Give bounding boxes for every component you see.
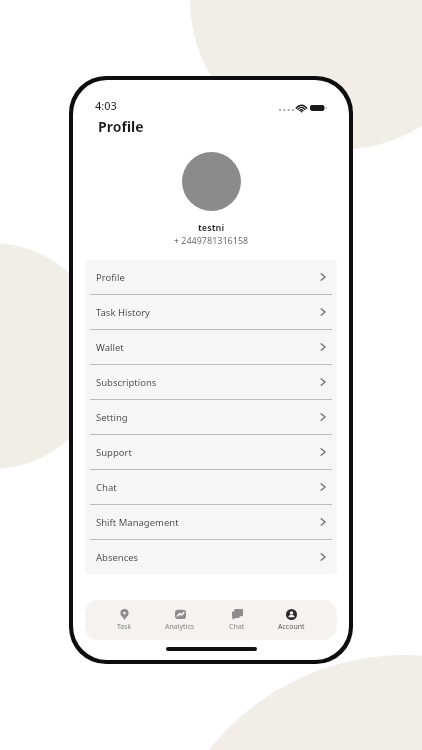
staticText: Chat xyxy=(229,622,245,632)
staticText: Analytics xyxy=(165,622,195,632)
staticText: Shift Management xyxy=(96,516,179,529)
button[interactable]: Support xyxy=(85,435,337,469)
staticText: 4:03 xyxy=(95,98,117,113)
staticText: Profile xyxy=(98,117,144,136)
staticText: Absences xyxy=(96,551,139,564)
staticText: Task xyxy=(117,622,132,632)
staticText: testni xyxy=(73,221,349,233)
staticText: Chat xyxy=(96,481,117,494)
staticText: Subscriptions xyxy=(96,376,157,389)
staticText: Task History xyxy=(96,306,150,319)
staticText: + 2449781316158 xyxy=(73,234,349,246)
button[interactable]: Task xyxy=(111,606,138,635)
button[interactable]: Task History xyxy=(85,295,337,329)
button[interactable]: Absences xyxy=(85,540,337,574)
staticText: Setting xyxy=(96,411,128,424)
button[interactable]: Account xyxy=(272,606,311,635)
button[interactable]: Wallet xyxy=(85,330,337,364)
button[interactable]: Shift Management xyxy=(85,505,337,539)
button[interactable]: Chat xyxy=(223,606,251,635)
button[interactable]: Subscriptions xyxy=(85,365,337,399)
button[interactable]: Analytics xyxy=(159,606,201,635)
button[interactable]: Chat xyxy=(85,470,337,504)
button[interactable]: Profile xyxy=(85,260,337,294)
staticText: Account xyxy=(278,622,305,632)
staticText: Wallet xyxy=(96,341,124,354)
button[interactable]: Setting xyxy=(85,400,337,434)
staticText: Support xyxy=(96,446,132,459)
staticText: Profile xyxy=(96,271,125,284)
